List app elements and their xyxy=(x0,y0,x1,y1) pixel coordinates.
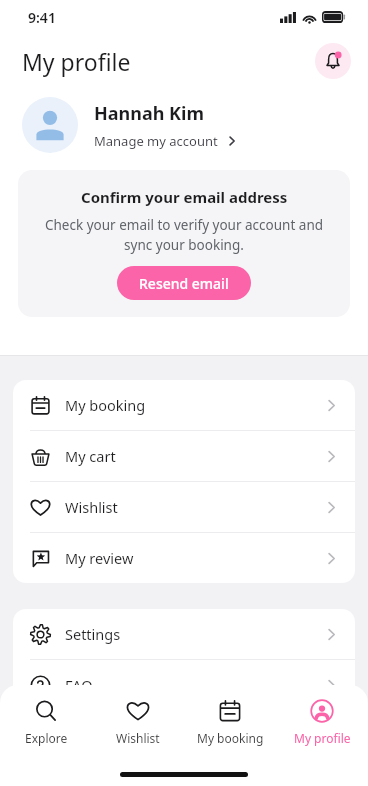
button[interactable]: Notifications xyxy=(315,43,351,79)
button[interactable]: FAQ xyxy=(13,660,355,710)
staticText: Wishlist xyxy=(116,730,160,746)
button[interactable]: Explore xyxy=(0,697,92,748)
button[interactable]: Resend email xyxy=(117,266,251,300)
staticText: Check your email to verify your account … xyxy=(32,216,336,254)
staticText: FAQ xyxy=(65,675,93,695)
button[interactable]: My profile xyxy=(276,697,368,748)
button[interactable]: Wishlist xyxy=(13,482,355,532)
staticText: Explore xyxy=(25,730,68,746)
button[interactable]: My review xyxy=(13,533,355,583)
staticText: Confirm your email address xyxy=(81,187,288,207)
staticText: Hannah Kim xyxy=(94,101,204,126)
staticText: My booking xyxy=(65,395,146,415)
staticText: My profile xyxy=(22,46,131,77)
staticText: Manage my account xyxy=(94,132,218,150)
staticText: My review xyxy=(65,548,134,568)
staticText: My booking xyxy=(197,730,264,746)
button[interactable]: Settings xyxy=(13,609,355,659)
staticText: About xyxy=(65,726,107,746)
button[interactable]: My booking xyxy=(184,697,276,748)
button[interactable]: About xyxy=(13,711,355,761)
button[interactable]: Wishlist xyxy=(92,697,184,748)
staticText: My profile xyxy=(294,730,351,746)
staticText: My cart xyxy=(65,446,116,466)
button[interactable]: My cart xyxy=(13,431,355,481)
staticText: 9:41 xyxy=(28,8,56,27)
button[interactable]: My booking xyxy=(13,380,355,430)
button[interactable]: Hannah Kim xyxy=(22,88,348,162)
staticText: Wishlist xyxy=(65,497,118,517)
staticText: Settings xyxy=(65,624,121,644)
staticText: Resend email xyxy=(139,274,229,293)
